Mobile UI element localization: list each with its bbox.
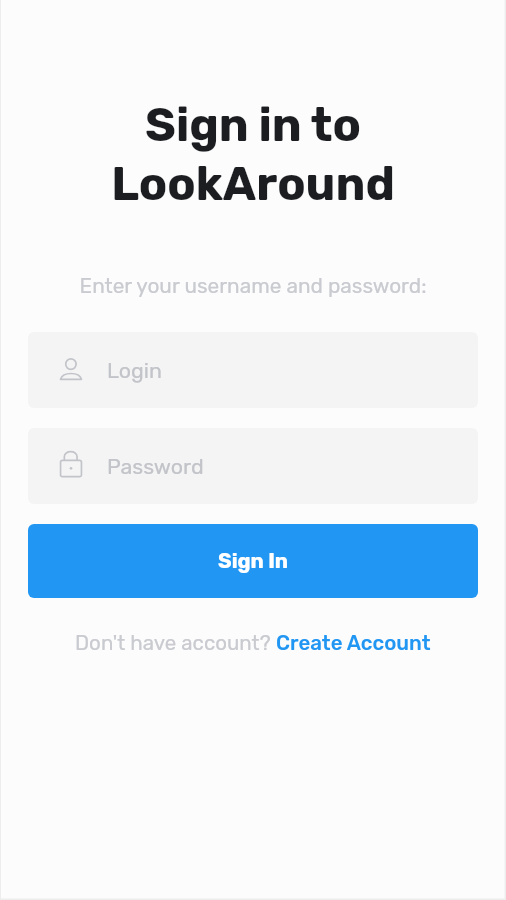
staticText: Sign in to LookAround — [0, 97, 506, 212]
staticText: Sign In — [218, 549, 289, 573]
other: Password — [57, 452, 85, 480]
staticText: Login — [107, 358, 163, 383]
button[interactable]: Password — [28, 428, 478, 504]
button[interactable]: Create Account — [276, 631, 431, 655]
staticText: Enter your username and password: — [0, 274, 506, 299]
other: Username — [57, 356, 85, 384]
staticText: Don't have account? — [75, 631, 276, 655]
button[interactable]: Sign In — [28, 524, 478, 598]
staticText: Password — [107, 454, 204, 479]
button[interactable]: Username — [28, 332, 478, 408]
